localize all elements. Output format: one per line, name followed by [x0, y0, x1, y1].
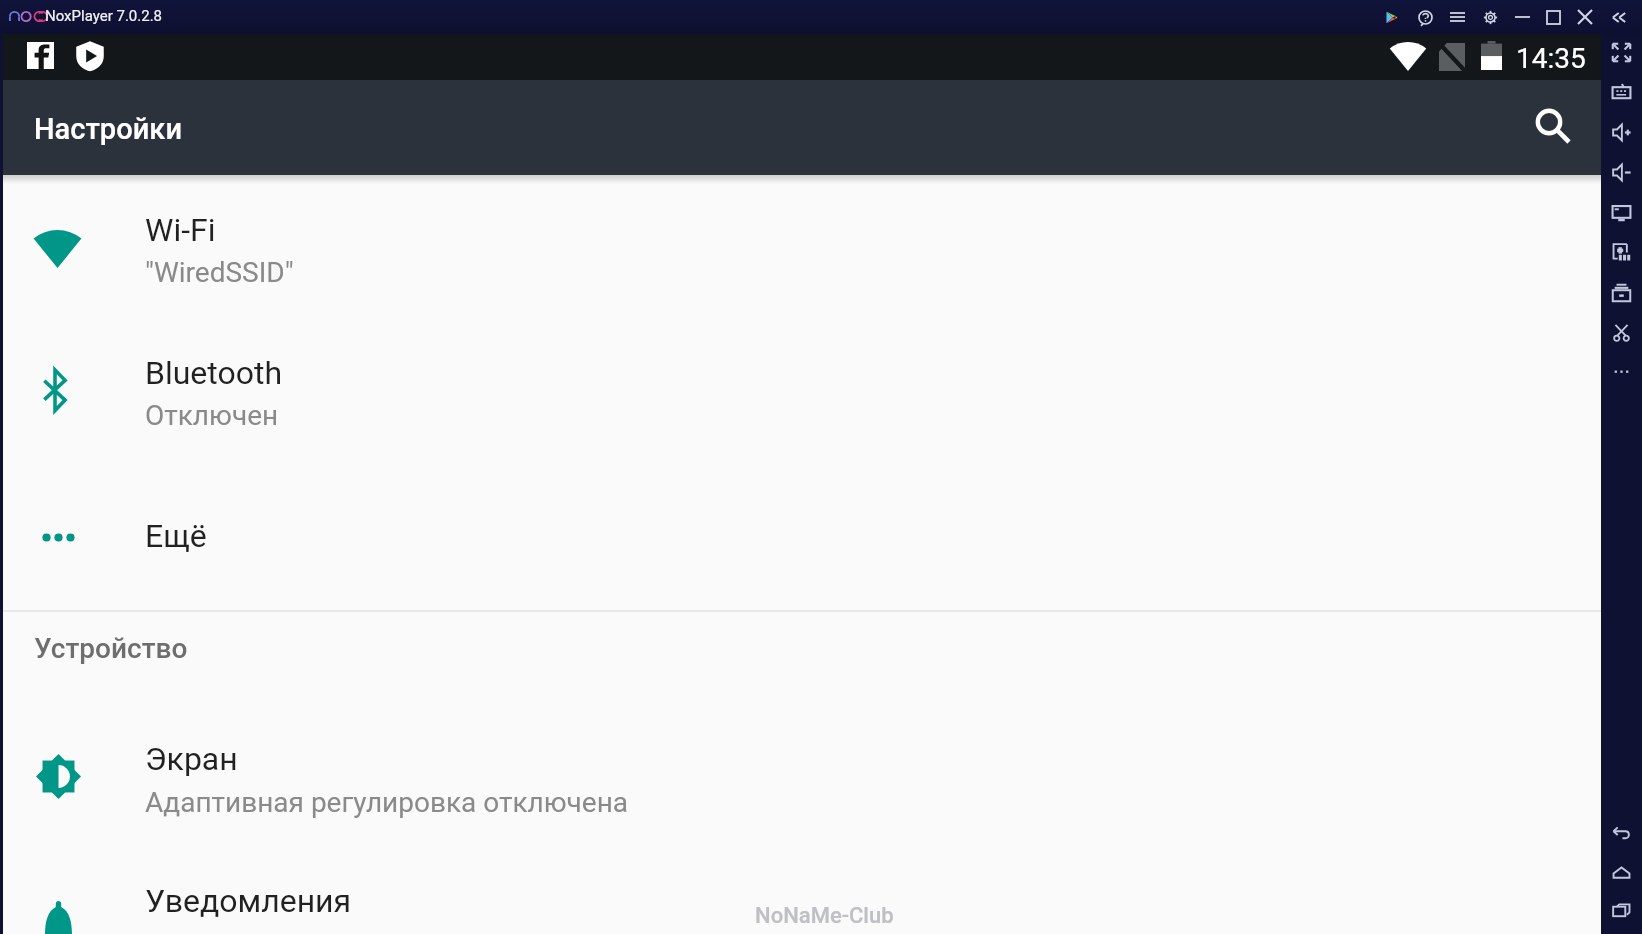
- button[interactable]: Settings: [1475, 0, 1505, 34]
- button[interactable]: Уведомления: [3, 855, 1601, 934]
- button[interactable]: Menu: [1442, 0, 1472, 34]
- button[interactable]: Full screen: [1601, 33, 1642, 71]
- button[interactable]: Ещё: [3, 469, 1601, 609]
- button[interactable]: Recents: [1601, 891, 1642, 929]
- button[interactable]: Back: [1601, 814, 1642, 852]
- button[interactable]: Wi-Fi: [3, 181, 1601, 325]
- button[interactable]: Volume up: [1601, 113, 1642, 151]
- staticText: Отключен: [145, 399, 279, 432]
- button[interactable]: Close: [1570, 0, 1600, 34]
- button[interactable]: Install APK: [1601, 233, 1642, 271]
- button[interactable]: Shared folder: [1601, 273, 1642, 311]
- button[interactable]: Facebook: [27, 42, 54, 69]
- staticText: Уведомления: [145, 882, 352, 920]
- button[interactable]: Cut: [1601, 313, 1642, 351]
- button[interactable]: Volume down: [1601, 153, 1642, 191]
- button[interactable]: Экран: [3, 711, 1601, 855]
- button[interactable]: Bluetooth: [3, 325, 1601, 469]
- button[interactable]: Home: [1601, 854, 1642, 892]
- staticText: NoNaMe-Club: [755, 903, 894, 929]
- staticText: Настройки: [34, 112, 183, 146]
- staticText: Ещё: [145, 517, 207, 555]
- button[interactable]: Keyboard: [1601, 73, 1642, 111]
- button[interactable]: Screenshot: [1601, 193, 1642, 231]
- button[interactable]: Collapse toolbar: [1604, 0, 1634, 34]
- button[interactable]: Help: [1410, 0, 1440, 34]
- staticText: NoxPlayer 7.0.2.8: [45, 7, 163, 25]
- staticText: 14:35: [1516, 42, 1586, 75]
- staticText: Экран: [145, 740, 238, 778]
- button[interactable]: Maximize: [1538, 0, 1568, 34]
- staticText: Адаптивная регулировка отключена: [145, 786, 629, 819]
- button[interactable]: More: [1601, 352, 1642, 390]
- staticText: Bluetooth: [145, 354, 283, 392]
- button[interactable]: Minimize: [1507, 0, 1537, 34]
- staticText: Wi-Fi: [145, 211, 216, 249]
- staticText: "WiredSSID": [145, 256, 294, 289]
- button[interactable]: Play Store: [1376, 0, 1406, 34]
- staticText: Устройство: [34, 632, 188, 665]
- button[interactable]: Security app: [74, 40, 106, 72]
- button[interactable]: Search: [1523, 99, 1583, 159]
